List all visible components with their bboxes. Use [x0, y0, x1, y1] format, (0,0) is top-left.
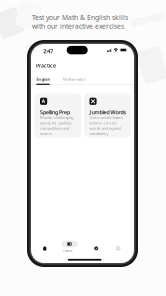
button[interactable]: Profile: [112, 242, 125, 255]
staticText: Practice: [36, 62, 56, 69]
staticText: Test your Math & English skills with our…: [32, 13, 128, 31]
staticText: Unscramble letters to form correct words…: [89, 115, 123, 136]
staticText: Spelling Prep: [40, 109, 70, 116]
staticText: Practice: [63, 249, 73, 253]
staticText: Jumbled Words: [89, 109, 126, 116]
button[interactable]: Jumbled Words: [84, 93, 131, 137]
button[interactable]: Settings: [90, 242, 103, 255]
staticText: A: [42, 98, 46, 105]
button[interactable]: A: [35, 93, 82, 137]
staticText: 2:47: [43, 48, 53, 55]
staticText: English: [36, 76, 50, 82]
button[interactable]: English: [36, 76, 50, 86]
button[interactable]: Mathematics: [63, 76, 89, 86]
button[interactable]: Practice: [61, 241, 78, 256]
staticText: Mathematics: [63, 76, 86, 82]
button[interactable]: Home: [38, 242, 51, 255]
staticText: Master challenging words for spelling co…: [40, 115, 73, 136]
